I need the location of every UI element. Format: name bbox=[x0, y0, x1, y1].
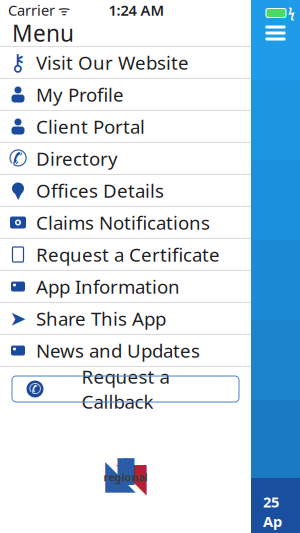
button[interactable]: Claims Notifications bbox=[0, 207, 251, 239]
staticText: regional bbox=[103, 470, 147, 484]
button[interactable]: My Profile bbox=[0, 79, 251, 111]
staticText: Claims Notifications bbox=[36, 210, 210, 235]
staticText: Directory bbox=[36, 146, 118, 171]
staticText: ϟ bbox=[288, 5, 295, 21]
staticText: 25 Ap bbox=[263, 492, 282, 531]
button[interactable]: Request a Certificate bbox=[0, 239, 251, 271]
button[interactable]: Close menu bbox=[253, 20, 297, 46]
button[interactable]: App Information bbox=[0, 271, 251, 303]
button[interactable]: ✆ bbox=[0, 143, 251, 175]
button[interactable]: ⚷ bbox=[0, 47, 251, 79]
staticText: Menu bbox=[12, 18, 74, 48]
staticText: Request a Callback bbox=[81, 364, 169, 414]
staticText: ◣ bbox=[105, 451, 136, 497]
staticText: Share This App bbox=[36, 306, 166, 331]
button[interactable]: ➤ bbox=[0, 303, 251, 335]
staticText: ⚷ bbox=[9, 50, 26, 75]
staticText: ▐▌ bbox=[108, 459, 142, 484]
staticText: Visit Our Website bbox=[36, 50, 189, 75]
button[interactable]: ✆ bbox=[12, 376, 239, 402]
staticText: Offices Details bbox=[36, 178, 164, 203]
staticText: News and Updates bbox=[36, 338, 200, 363]
staticText: ✆ bbox=[29, 381, 41, 397]
staticText: ▼ bbox=[14, 189, 22, 201]
staticText: ➤ bbox=[9, 307, 26, 330]
staticText: App Information bbox=[36, 274, 180, 299]
staticText: ᯤ bbox=[55, 1, 70, 19]
button[interactable]: News and Updates bbox=[0, 335, 251, 367]
button[interactable]: ▼ bbox=[0, 175, 251, 207]
staticText: Client Portal bbox=[36, 114, 145, 139]
staticText: ✆ bbox=[8, 146, 27, 171]
button[interactable]: Client Portal bbox=[0, 111, 251, 143]
staticText: Request a Certificate bbox=[36, 242, 220, 267]
staticText: My Profile bbox=[36, 82, 124, 107]
staticText: ◥ bbox=[116, 454, 147, 500]
staticText: 1:24 AM bbox=[108, 0, 164, 20]
staticText: Carrier bbox=[8, 0, 55, 20]
